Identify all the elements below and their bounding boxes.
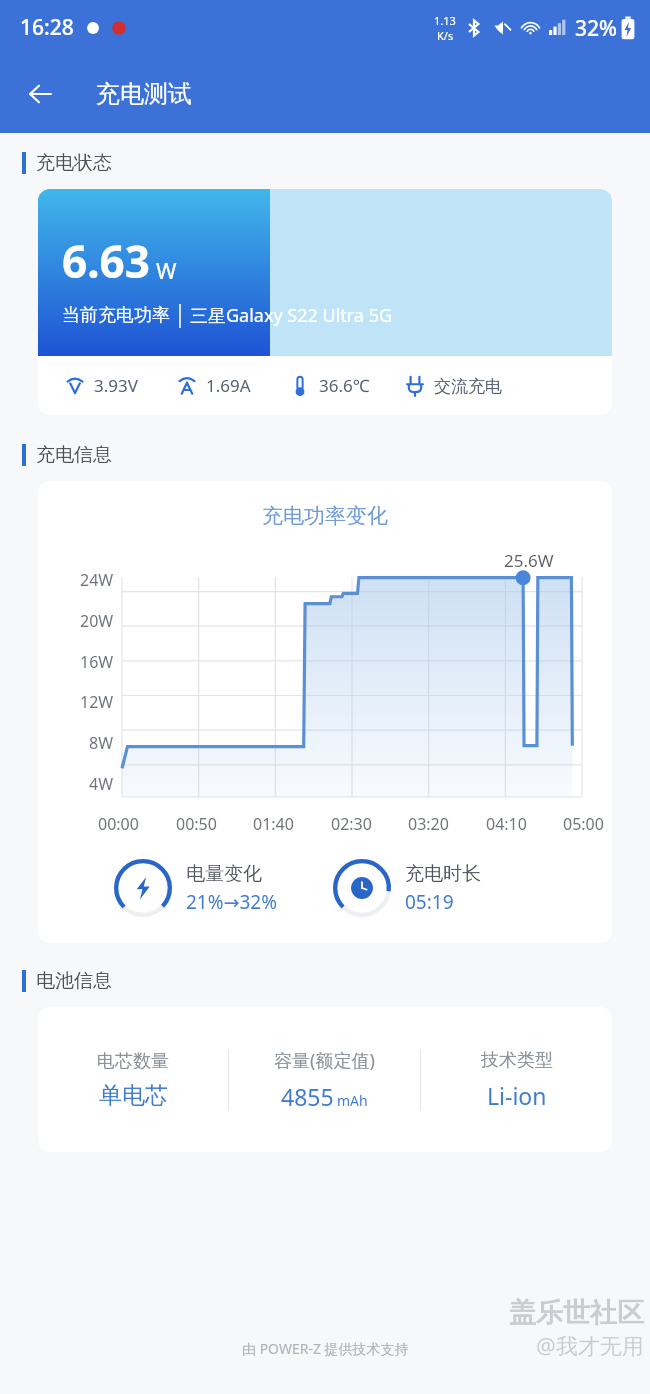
staticText: 充电功率变化 (38, 503, 612, 529)
staticText: 03:20 (408, 813, 449, 835)
staticText: 充电信息 (36, 443, 112, 467)
staticText: 16:28 (20, 13, 74, 42)
staticText: 1.13 (434, 13, 456, 28)
staticText: 容量(额定值) (274, 1048, 375, 1073)
staticText: 当前充电功率 (62, 304, 170, 327)
staticText: 单电芯 (99, 1081, 168, 1110)
staticText: 00:00 (98, 813, 139, 835)
staticText: 交流充电 (434, 376, 502, 397)
staticText: 电池信息 (36, 969, 112, 993)
button[interactable]: Back (14, 68, 66, 120)
staticText: 技术类型 (481, 1049, 553, 1072)
button[interactable]: 充电功率变化 (38, 481, 612, 943)
staticText: 3.93V (94, 374, 138, 397)
staticText: 32% (575, 14, 617, 43)
staticText: 24W (80, 569, 114, 591)
staticText: Li-ion (487, 1080, 547, 1111)
staticText: 电芯数量 (97, 1050, 169, 1073)
staticText: 01:40 (253, 813, 294, 835)
staticText: 盖乐世社区 (509, 1296, 644, 1330)
staticText: 12W (80, 691, 114, 713)
staticText: 00:50 (176, 813, 217, 835)
staticText: 16W (80, 651, 114, 673)
staticText: mAh (337, 1091, 368, 1110)
staticText: 电量变化 (186, 862, 262, 886)
staticText: 4855 (281, 1081, 334, 1112)
staticText: 05:00 (563, 813, 604, 835)
staticText: 05:19 (405, 889, 454, 915)
staticText: K/s (437, 28, 454, 43)
staticText: 04:10 (486, 813, 527, 835)
staticText: 1.69A (206, 374, 251, 397)
staticText: 由 POWER-Z 提供技术支持 (242, 1339, 409, 1358)
staticText: 充电测试 (96, 79, 192, 109)
staticText: 21%→32% (186, 889, 277, 915)
staticText: 8W (89, 732, 114, 754)
staticText: 充电时长 (405, 862, 481, 886)
staticText: 36.6℃ (319, 374, 370, 397)
staticText: 20W (80, 610, 114, 632)
staticText: 4W (89, 773, 114, 795)
staticText: 6.63 (62, 231, 150, 291)
button[interactable]: 6.63 (38, 189, 612, 415)
staticText: 02:30 (331, 813, 372, 835)
staticText: 三星Galaxy S22 Ultra 5G (190, 303, 393, 328)
button[interactable]: 电芯数量 (38, 1007, 612, 1152)
staticText: @我才无用 (536, 1330, 644, 1360)
staticText: 25.6W (504, 549, 554, 572)
staticText: W (156, 255, 177, 285)
staticText: 充电状态 (36, 151, 112, 175)
